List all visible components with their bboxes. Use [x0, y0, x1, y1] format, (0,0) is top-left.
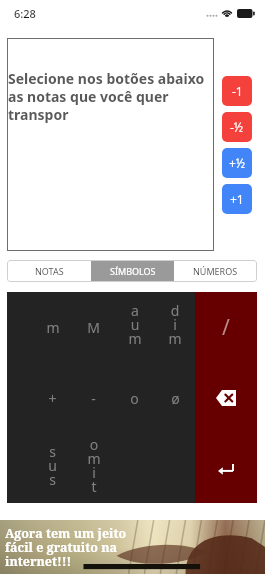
staticText: NOTAS	[35, 265, 64, 277]
staticText: SÍMBOLOS	[110, 265, 156, 277]
staticText: a u m	[128, 301, 142, 348]
staticText: +1	[230, 191, 244, 207]
button[interactable]: -½	[222, 112, 252, 142]
button[interactable]: +1	[222, 184, 252, 214]
staticText: M	[87, 318, 100, 337]
button[interactable]: o m i t	[73, 433, 114, 503]
staticText: /	[222, 313, 230, 342]
staticText: ø	[171, 389, 180, 408]
staticText: o	[130, 389, 139, 408]
button[interactable]: Backspace	[195, 363, 257, 433]
button[interactable]: m	[32, 292, 73, 363]
staticText: Selecione nos botões abaixo as notas que…	[8, 69, 213, 124]
staticText: -	[91, 389, 96, 408]
button[interactable]: NOTAS	[7, 260, 91, 282]
button[interactable]: a u m	[114, 292, 155, 363]
staticText: +	[48, 389, 57, 408]
button[interactable]: Enter	[195, 433, 257, 503]
button[interactable]: NÚMEROS	[174, 260, 257, 282]
staticText: m	[46, 318, 60, 337]
button[interactable]: Selecione nos botões abaixo as notas que…	[7, 38, 214, 251]
staticText: +½	[229, 155, 246, 171]
button[interactable]: o	[114, 363, 155, 433]
button[interactable]: ø	[155, 363, 195, 433]
button[interactable]: -1	[222, 76, 252, 106]
staticText: 6:28	[14, 6, 36, 21]
staticText: -½	[230, 119, 244, 135]
button[interactable]: s u s	[32, 433, 73, 503]
staticText: -1	[232, 83, 243, 99]
button[interactable]: d i m	[155, 292, 195, 363]
staticText: o m i t	[87, 435, 101, 496]
staticText: d i m	[168, 301, 182, 348]
staticText: Agora tem um jeito fácil e gratuito na i…	[5, 525, 127, 570]
button[interactable]: M	[73, 292, 114, 363]
button[interactable]: +	[32, 363, 73, 433]
button[interactable]: +½	[222, 148, 252, 178]
button[interactable]: SÍMBOLOS	[91, 260, 174, 282]
staticText: NÚMEROS	[193, 265, 238, 277]
button[interactable]: -	[73, 363, 114, 433]
button[interactable]: /	[195, 292, 257, 363]
button[interactable]: Agora tem um jeito fácil e gratuito na i…	[0, 520, 265, 574]
staticText: s u s	[48, 442, 57, 489]
